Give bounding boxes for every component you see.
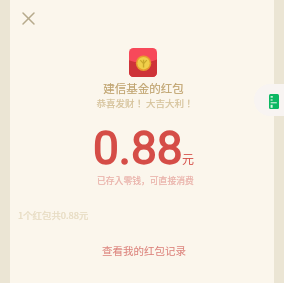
staticText: 恭喜发财！ 大吉大利！: [96, 96, 194, 110]
button[interactable]: Open mini program: [254, 84, 284, 116]
staticText: 查看我的红包记录: [102, 243, 186, 258]
button[interactable]: 查看我的红包记录: [92, 237, 196, 264]
staticText: 元: [182, 150, 195, 167]
staticText: 0.88: [93, 121, 183, 175]
button[interactable]: Close: [16, 6, 40, 30]
staticText: 建信基金的红包: [103, 80, 184, 97]
staticText: 已存入零钱，可直接消费: [97, 174, 194, 187]
staticText: 1个红包共0.88元: [18, 208, 89, 222]
